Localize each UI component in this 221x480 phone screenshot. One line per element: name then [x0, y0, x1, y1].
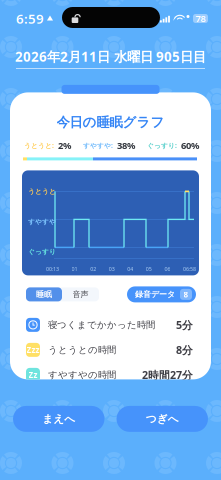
staticText: 38% [117, 139, 135, 152]
staticText: 音声 [72, 289, 88, 299]
staticText: 60% [181, 139, 199, 152]
button[interactable]: まえへ [13, 406, 104, 432]
staticText: ぐっすり: [147, 141, 177, 150]
staticText: 06:58 [183, 265, 196, 272]
staticText: すやすやの時間 [48, 369, 116, 381]
staticText: Zzz [26, 345, 39, 355]
staticText: うとうと: [24, 141, 54, 150]
staticText: 5分 [176, 318, 193, 332]
staticText: 寝つくまでかかった時間 [48, 319, 155, 331]
staticText: 02 [90, 265, 96, 272]
staticText: 録音データ [135, 289, 175, 299]
staticText: 04 [127, 265, 133, 272]
staticText: 2026年2月11日 水曜日 905日目 [15, 48, 206, 65]
button[interactable]: Zzz [10, 337, 211, 362]
staticText: 01 [72, 265, 78, 272]
staticText: 00:13 [46, 265, 59, 272]
staticText: うとうと [28, 187, 56, 196]
staticText: 2% [58, 139, 71, 152]
staticText: 2時間27分 [142, 368, 193, 382]
staticText: 8 [183, 289, 188, 300]
staticText: 睡眠 [36, 289, 52, 299]
staticText: 05 [146, 265, 152, 272]
staticText: 78 [195, 12, 205, 25]
button[interactable]: 音声 [62, 287, 99, 301]
staticText: 6:59 [16, 10, 44, 27]
button[interactable]: Zz [10, 362, 211, 387]
staticText: 06 [164, 265, 170, 272]
button[interactable]: 睡眠 [26, 287, 62, 301]
staticText: 03 [109, 265, 115, 272]
button[interactable]: つぎへ [116, 406, 208, 432]
staticText: 今日の睡眠グラフ [56, 114, 164, 131]
staticText: Zz [28, 370, 37, 380]
staticText: すやすや [28, 218, 56, 226]
staticText: ぐっすり [28, 248, 56, 256]
button[interactable]: 録音データ [127, 286, 196, 302]
button[interactable]: 寝つくまでかかった時間 [10, 312, 211, 337]
staticText: すやすや: [83, 141, 113, 150]
staticText: うとうとの時間 [48, 344, 116, 356]
staticText: 8分 [176, 343, 193, 357]
staticText: まえへ [42, 412, 75, 425]
staticText: つぎへ [146, 412, 179, 425]
